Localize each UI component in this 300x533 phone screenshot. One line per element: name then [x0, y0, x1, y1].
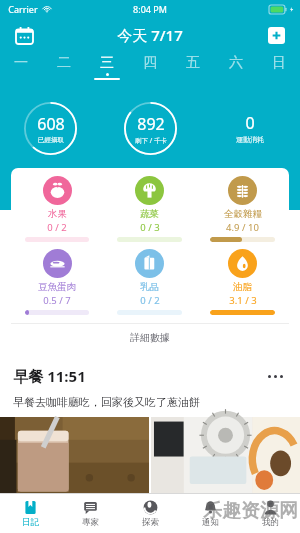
staticText: 五 [186, 54, 200, 72]
button[interactable]: Add entry [262, 21, 290, 49]
button[interactable]: 油脂 [196, 249, 289, 315]
staticText: 六 [229, 54, 243, 72]
staticText: 四 [143, 54, 157, 72]
button[interactable]: Calendar [10, 21, 38, 49]
button[interactable]: 四 [128, 52, 171, 86]
staticText: 我的 [262, 517, 279, 528]
staticText: 詳細數據 [130, 331, 170, 344]
staticText: 水果 [48, 208, 67, 220]
staticText: 608 [37, 113, 65, 135]
staticText: 運動消耗 [236, 135, 264, 144]
staticText: 0 / 3 [140, 221, 160, 234]
staticText: 二 [57, 54, 71, 72]
staticText: 探索 [142, 517, 159, 528]
staticText: 乳品 [140, 281, 159, 293]
staticText: 油脂 [233, 281, 252, 293]
button[interactable]: 豆魚蛋肉 [11, 249, 103, 315]
button[interactable]: 蔬菜 [103, 176, 196, 242]
staticText: 乐趣资源网 [203, 499, 298, 523]
button[interactable]: 我的 [240, 494, 300, 533]
staticText: 全穀雜糧 [224, 208, 262, 220]
staticText: 一 [14, 54, 28, 72]
staticText: 今天 7/17 [117, 25, 183, 45]
button[interactable]: 通知 [180, 494, 240, 533]
staticText: 剩下 / 千卡 [135, 136, 167, 145]
button[interactable]: 專家 [60, 494, 120, 533]
staticText: 0 [245, 112, 255, 134]
button[interactable] [0, 417, 149, 493]
staticText: 3.1 / 3 [229, 294, 257, 307]
button[interactable]: 乳品 [103, 249, 196, 315]
button[interactable]: 二 [42, 52, 85, 86]
staticText: 早餐去咖啡廳吃，回家後又吃了蔥油餅 [13, 395, 200, 409]
staticText: 通知 [202, 517, 219, 528]
staticText: 蔬菜 [140, 208, 159, 220]
button[interactable]: 日 [257, 52, 300, 86]
staticText: 日記 [22, 517, 39, 528]
button[interactable]: 日記 [0, 494, 60, 533]
staticText: 專家 [82, 517, 99, 528]
staticText: 已經攝取 [38, 136, 64, 144]
button[interactable] [151, 417, 300, 493]
staticText: 0 / 2 [47, 221, 67, 234]
button[interactable]: 全穀雜糧 [196, 176, 289, 242]
button[interactable]: 水果 [11, 176, 103, 242]
staticText: 三 [100, 54, 114, 72]
staticText: Carrier [8, 3, 38, 15]
button[interactable]: 探索 [120, 494, 180, 533]
staticText: 892 [137, 113, 165, 135]
button[interactable]: 六 [214, 52, 257, 86]
staticText: 0 / 2 [140, 294, 160, 307]
button[interactable]: 五 [171, 52, 214, 86]
staticText: 8:04 PM [133, 3, 167, 15]
button[interactable]: 詳細數據 [11, 324, 289, 350]
staticText: 日 [272, 54, 286, 72]
button[interactable]: More options [263, 364, 287, 388]
button[interactable]: 一 [0, 52, 42, 86]
button[interactable]: 三 [85, 52, 128, 86]
staticText: 4.9 / 10 [226, 221, 259, 234]
staticText: 0.5 / 7 [43, 294, 71, 307]
staticText: 早餐 11:51 [13, 366, 86, 386]
staticText: 豆魚蛋肉 [38, 281, 76, 293]
